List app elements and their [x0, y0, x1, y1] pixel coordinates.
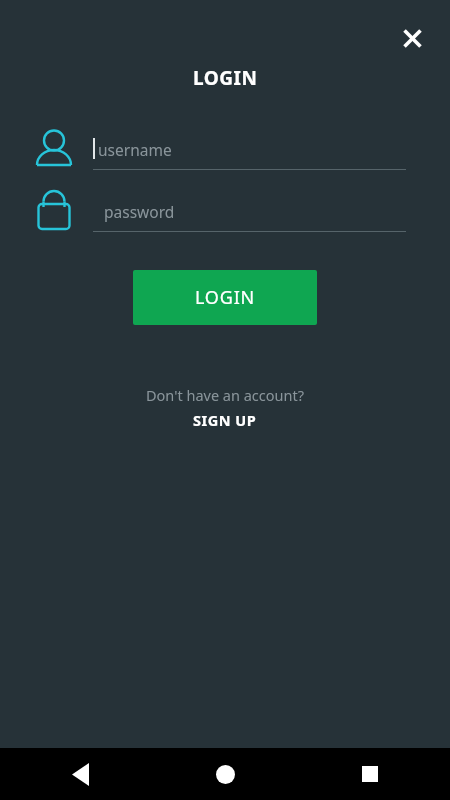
staticText: LOGIN — [195, 285, 256, 310]
button[interactable]: LOGIN — [133, 270, 317, 325]
staticText: password — [104, 201, 175, 222]
button[interactable]: Close — [392, 18, 432, 58]
button[interactable]: Back — [0, 748, 160, 800]
button[interactable]: password — [93, 195, 406, 229]
staticText: SIGN UP — [193, 410, 257, 430]
button[interactable]: SIGN UP — [185, 408, 265, 432]
staticText: LOGIN — [193, 65, 258, 91]
button[interactable]: username — [93, 133, 406, 167]
button[interactable]: Recent apps — [290, 748, 450, 800]
staticText: Don't have an account? — [146, 385, 304, 405]
button[interactable]: Home — [160, 748, 290, 800]
staticText: username — [98, 139, 172, 160]
